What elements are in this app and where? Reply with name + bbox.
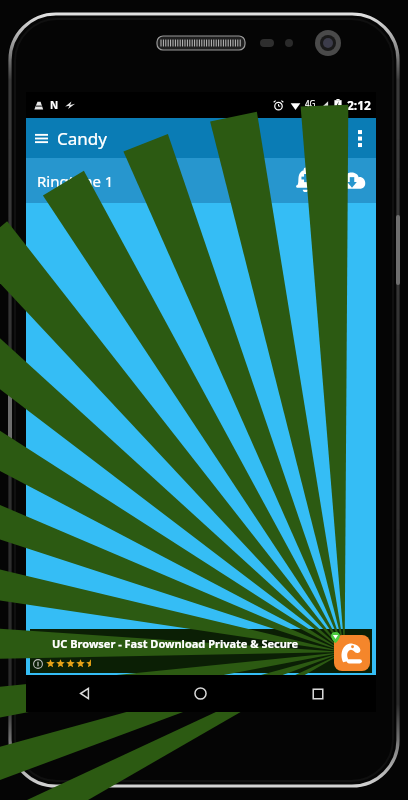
staticText: Candy [57, 127, 107, 150]
button[interactable]: Recent apps [259, 675, 376, 712]
button[interactable]: Menu [26, 118, 115, 158]
staticText: UC Browser - Fast Download Private & Sec… [52, 636, 299, 651]
other: Menu [35, 132, 48, 145]
staticText: 4G [305, 98, 316, 109]
button[interactable]: More options [344, 118, 376, 158]
button[interactable]: Ringtone 1 [26, 158, 376, 203]
button[interactable]: Download [328, 158, 376, 203]
button[interactable]: Home [142, 675, 259, 712]
staticText: 2:12 [347, 97, 371, 113]
staticText: Ringtone 1 [37, 171, 283, 191]
button[interactable]: Back [26, 675, 142, 712]
button[interactable]: UC Browser - Fast Download Private & Sec… [30, 629, 372, 673]
button[interactable]: Set as ringtone [283, 158, 328, 203]
button[interactable]: Refresh [304, 118, 344, 158]
staticText: N [50, 98, 59, 112]
